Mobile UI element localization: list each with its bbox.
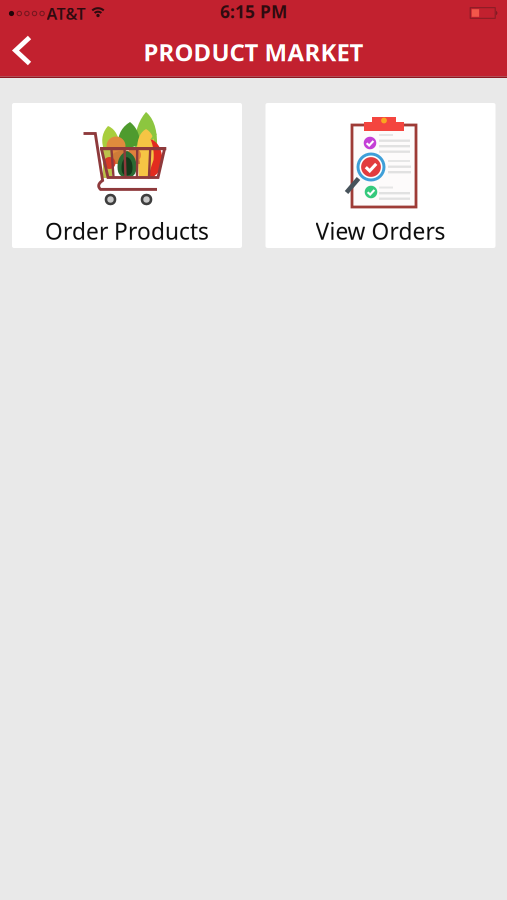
staticText: 6:15 PM [220,0,287,23]
staticText: View Orders [315,216,445,246]
staticText: PRODUCT MARKET [143,36,363,68]
staticText: AT&T [46,3,85,24]
button[interactable]: View Orders [265,103,495,248]
button[interactable]: Back [3,29,43,71]
staticText: Order Products [45,216,209,246]
button[interactable]: Order Products [12,103,242,248]
